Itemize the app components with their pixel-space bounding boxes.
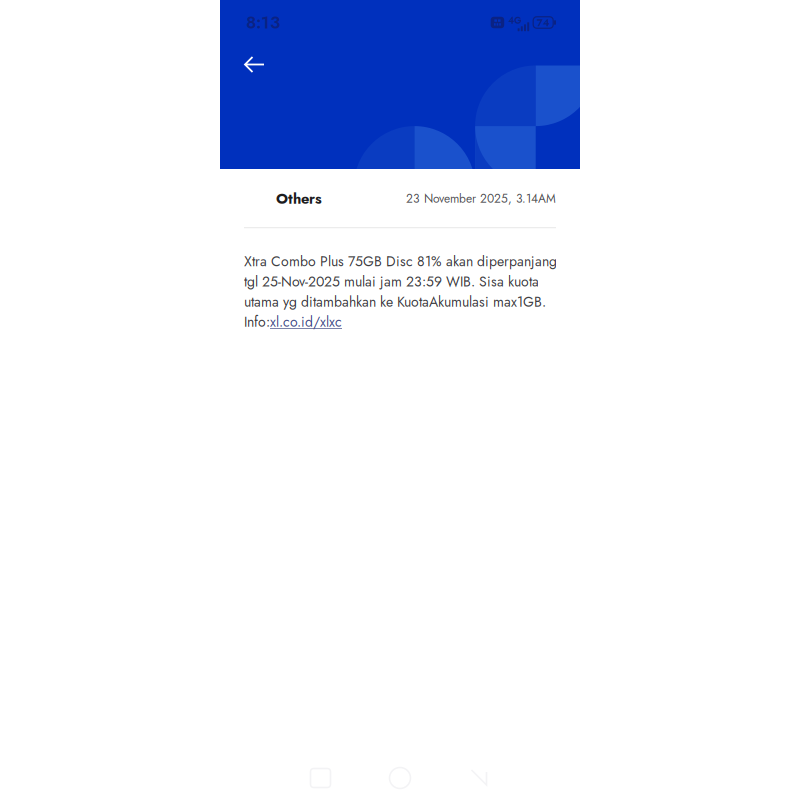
- button[interactable]: Back: [220, 45, 279, 84]
- staticText: 8:13: [246, 10, 280, 35]
- staticText: xl.co.id/xlxc: [270, 312, 342, 332]
- staticText: Others: [276, 188, 322, 209]
- staticText: Xtra Combo Plus 75GB Disc 81% akan diper…: [244, 251, 557, 271]
- staticText: utama yg ditambahkan ke KuotaAkumulasi m…: [244, 292, 546, 312]
- button[interactable]: xl.co.id/xlxc: [270, 312, 342, 332]
- staticText: Info:: [244, 312, 270, 332]
- staticText: 4G: [508, 14, 521, 27]
- staticText: 74: [537, 15, 550, 30]
- staticText: tgl 25-Nov-2025 mulai jam 23:59 WIB. Sis…: [244, 271, 539, 292]
- staticText: 23 November 2025, 3.14AM: [406, 190, 556, 207]
